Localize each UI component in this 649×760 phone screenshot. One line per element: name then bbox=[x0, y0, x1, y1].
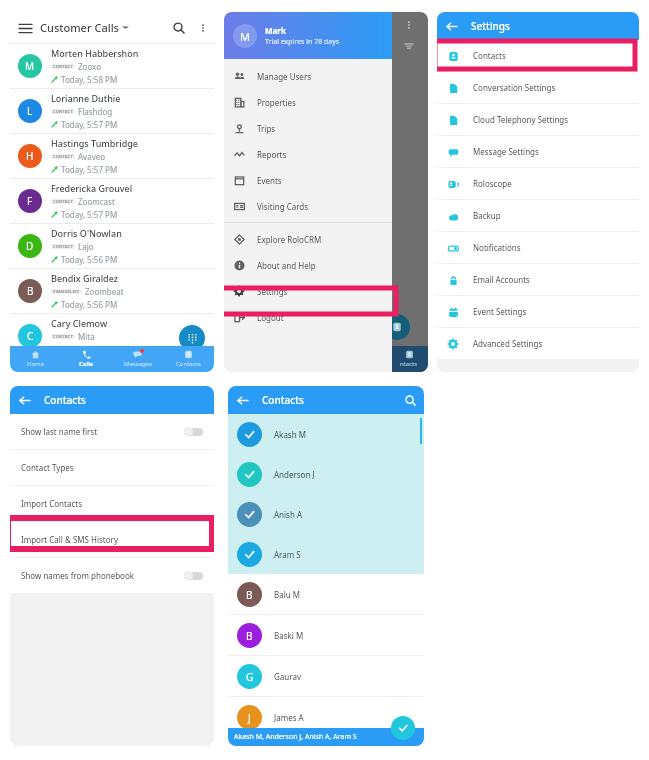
staticText: G bbox=[246, 670, 254, 684]
staticText: Calls bbox=[79, 360, 94, 368]
staticText: Import Contacts bbox=[21, 498, 82, 509]
staticText: Balu M bbox=[274, 589, 301, 600]
button[interactable]: C bbox=[10, 314, 214, 358]
staticText: Today, 5:57 PM bbox=[61, 164, 118, 175]
button[interactable]: Show names from phonebook bbox=[10, 558, 214, 593]
staticText: Dorris O'Nowlan bbox=[51, 227, 122, 239]
button[interactable]: F bbox=[10, 179, 214, 223]
button[interactable]: Home bbox=[10, 346, 61, 372]
button[interactable]: B bbox=[10, 269, 214, 313]
button[interactable]: M bbox=[10, 44, 214, 88]
button[interactable]: Logout bbox=[224, 304, 392, 330]
button[interactable]: D bbox=[10, 224, 214, 268]
staticText: L bbox=[27, 104, 33, 118]
button[interactable]: About and Help bbox=[224, 252, 392, 278]
staticText: Contacts bbox=[176, 360, 201, 368]
button[interactable]: Message Settings bbox=[437, 136, 639, 167]
button[interactable]: More options bbox=[192, 17, 214, 39]
button[interactable]: Explore RoloCRM bbox=[224, 226, 392, 252]
staticText: Flashdog bbox=[78, 106, 113, 117]
staticText: Lorianne Duthie bbox=[51, 92, 121, 104]
button[interactable]: Back bbox=[228, 386, 256, 414]
button[interactable]: Notifications bbox=[437, 232, 639, 263]
staticText: Hastings Tumbridge bbox=[51, 137, 138, 149]
staticText: James A bbox=[274, 712, 304, 723]
button[interactable]: Reports bbox=[224, 141, 392, 167]
staticText: Morten Habbershon bbox=[51, 47, 139, 59]
button[interactable]: Import Contacts bbox=[10, 486, 214, 521]
button[interactable]: Akash M bbox=[228, 414, 424, 454]
staticText: C bbox=[27, 329, 34, 343]
button[interactable]: B bbox=[228, 574, 424, 614]
button[interactable]: Calls bbox=[61, 346, 112, 372]
button[interactable]: Visiting Cards bbox=[224, 193, 392, 219]
button[interactable]: Email Accounts bbox=[437, 264, 639, 295]
button[interactable]: Anderson J bbox=[228, 454, 424, 494]
button[interactable]: Backup bbox=[437, 200, 639, 231]
button[interactable]: M bbox=[224, 12, 392, 59]
staticText: Properties bbox=[257, 97, 296, 108]
staticText: Manage Users bbox=[257, 71, 312, 82]
staticText: Settings bbox=[257, 286, 288, 297]
button[interactable]: Customer Calls bbox=[40, 20, 166, 35]
button[interactable]: Settings bbox=[224, 278, 392, 304]
button[interactable]: H bbox=[10, 134, 214, 178]
staticText: CONTACT bbox=[53, 154, 73, 159]
staticText: Show names from phonebook bbox=[21, 570, 184, 581]
staticText: Bendix Giraldez bbox=[51, 272, 119, 284]
button[interactable]: Aram S bbox=[228, 534, 424, 574]
button[interactable]: Anish A bbox=[228, 494, 424, 534]
staticText: Messages bbox=[124, 360, 152, 368]
staticText: About and Help bbox=[257, 260, 316, 271]
staticText: CONTACT bbox=[53, 109, 73, 114]
button[interactable]: Properties bbox=[224, 89, 392, 115]
staticText: F bbox=[27, 194, 33, 208]
button[interactable]: Messages bbox=[112, 346, 163, 372]
button[interactable]: Open navigation drawer bbox=[10, 13, 40, 43]
button[interactable]: Conversation Settings bbox=[437, 72, 639, 103]
staticText: Fredericka Grouvel bbox=[51, 182, 133, 194]
staticText: M bbox=[25, 59, 35, 73]
staticText: Notifications bbox=[473, 242, 521, 253]
staticText: Conversation Settings bbox=[473, 82, 556, 93]
staticText: Trips bbox=[257, 123, 276, 134]
staticText: Lajo bbox=[78, 241, 94, 252]
button[interactable]: Cloud Telephony Settings bbox=[437, 104, 639, 135]
button[interactable]: G bbox=[228, 656, 424, 696]
staticText: Akash M, Anderson J, Anish A, Aram S bbox=[234, 732, 357, 742]
button[interactable]: Contacts bbox=[163, 346, 214, 372]
button[interactable]: Advanced Settings bbox=[437, 328, 639, 359]
button[interactable]: Manage Users bbox=[224, 63, 392, 89]
button[interactable]: J bbox=[228, 697, 424, 737]
button[interactable]: Show last name first bbox=[10, 414, 214, 449]
button[interactable]: B bbox=[228, 615, 424, 655]
button[interactable]: Roloscope bbox=[437, 168, 639, 199]
button[interactable]: Dialpad bbox=[179, 325, 205, 351]
button[interactable]: Back bbox=[10, 386, 38, 414]
button[interactable]: Events bbox=[224, 167, 392, 193]
button[interactable]: L bbox=[10, 89, 214, 133]
button[interactable]: Contacts bbox=[437, 40, 639, 71]
button[interactable]: Event Settings bbox=[437, 296, 639, 327]
staticText: Anish A bbox=[274, 509, 303, 520]
staticText: Gaurav bbox=[274, 671, 301, 682]
button[interactable]: Contact Types bbox=[10, 450, 214, 485]
staticText: EVANGELIST bbox=[53, 289, 80, 294]
staticText: J bbox=[248, 711, 251, 725]
staticText: ntacts bbox=[400, 360, 418, 368]
button[interactable]: Trips bbox=[224, 115, 392, 141]
staticText: Customer Calls bbox=[40, 20, 119, 35]
staticText: Today, 5:57 PM bbox=[61, 209, 118, 220]
button[interactable]: Search bbox=[166, 15, 192, 41]
staticText: Zoombeat bbox=[85, 286, 124, 297]
button[interactable]: Search bbox=[396, 386, 424, 414]
button[interactable]: Back bbox=[437, 12, 465, 40]
staticText: Anderson J bbox=[274, 469, 315, 480]
staticText: CONTACT bbox=[53, 64, 73, 69]
staticText: Trial expires in 78 days bbox=[265, 37, 340, 47]
button[interactable]: Confirm selection bbox=[391, 716, 415, 740]
staticText: Aram S bbox=[274, 549, 301, 560]
staticText: Zooxo bbox=[78, 61, 102, 72]
staticText: Contact Types bbox=[21, 462, 74, 473]
button[interactable]: Import Call & SMS History bbox=[10, 522, 214, 557]
